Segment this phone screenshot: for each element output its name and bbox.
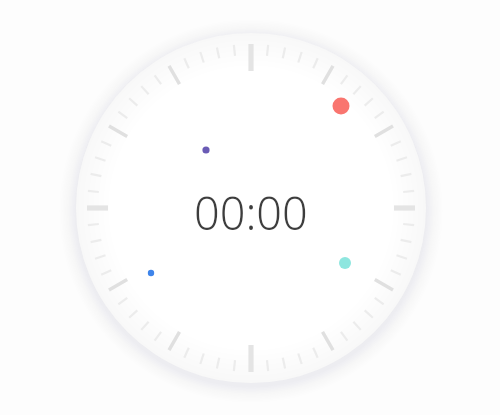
button[interactable]: Stopwatch dial, 00:00 bbox=[0, 0, 500, 415]
staticText: 00:00 bbox=[194, 182, 308, 243]
